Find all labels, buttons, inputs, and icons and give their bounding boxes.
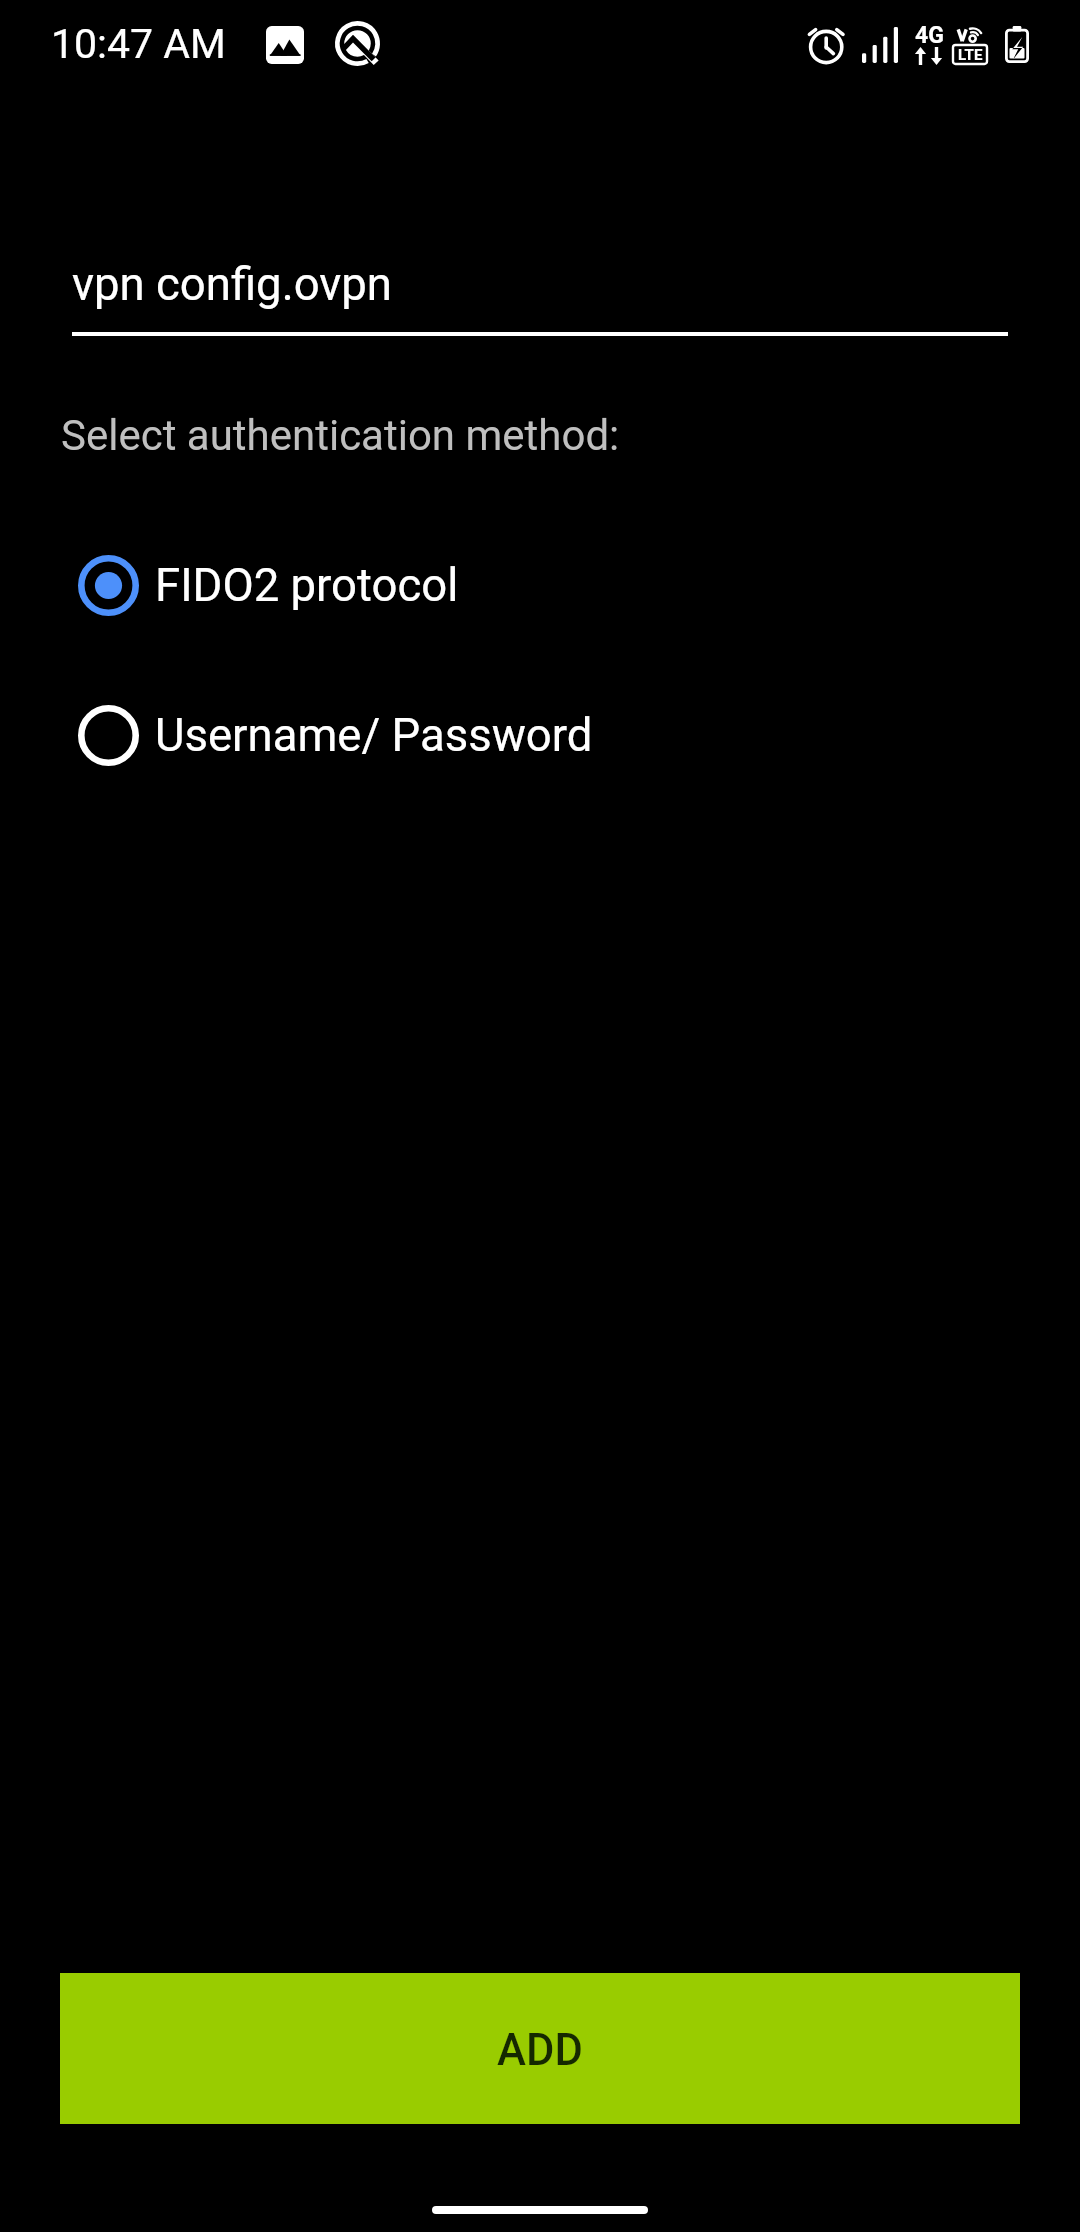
staticText: 4G [915, 22, 944, 49]
button[interactable]: FIDO2 protocol [48, 533, 1032, 637]
staticText: vpn config.ovpn [72, 258, 392, 311]
other: Alarm set [805, 23, 849, 67]
button[interactable]: vpn config.ovpn [72, 246, 1008, 336]
button[interactable]: Username/ Password [48, 683, 1032, 787]
button[interactable]: ADD [60, 1973, 1020, 2124]
staticText: FIDO2 protocol [155, 559, 459, 612]
staticText: LTE [958, 46, 983, 64]
other: Do not disturb [335, 21, 380, 66]
staticText: Username/ Password [155, 709, 593, 762]
other: Screenshot captured [266, 26, 304, 64]
staticText: 10:47 AM [51, 20, 226, 68]
staticText: ADD [497, 2025, 583, 2076]
staticText: Select authentication method: [61, 411, 620, 460]
other: Mobile signal [862, 27, 899, 63]
other: Battery charging [1005, 26, 1029, 63]
